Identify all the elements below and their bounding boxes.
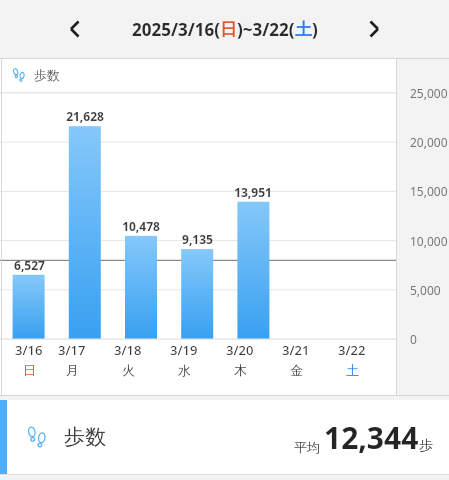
button[interactable]: 歩数 bbox=[0, 400, 449, 474]
staticText: 土 bbox=[295, 19, 312, 40]
button[interactable]: 2025/3/16( bbox=[132, 18, 318, 41]
staticText: 日 bbox=[220, 19, 237, 40]
staticText: 木 bbox=[234, 362, 247, 378]
staticText: 0 bbox=[410, 331, 417, 347]
staticText: 3/22 bbox=[338, 341, 366, 359]
staticText: 20,000 bbox=[410, 134, 448, 150]
staticText: 25,000 bbox=[410, 85, 448, 101]
staticText: ) bbox=[312, 18, 318, 41]
button[interactable]: Previous week bbox=[58, 12, 92, 46]
staticText: 月 bbox=[66, 362, 79, 378]
staticText: 火 bbox=[122, 362, 135, 378]
staticText: 金 bbox=[290, 362, 303, 378]
staticText: 10,000 bbox=[410, 233, 448, 249]
staticText: 2025/3/16( bbox=[132, 18, 220, 41]
staticText: 12,344 bbox=[324, 417, 419, 458]
staticText: 3/21 bbox=[282, 341, 310, 359]
staticText: 13,951 bbox=[234, 184, 272, 200]
staticText: 歩 bbox=[419, 437, 433, 455]
staticText: 日 bbox=[23, 362, 36, 378]
staticText: 3/16 bbox=[15, 341, 43, 359]
staticText: 6,527 bbox=[14, 257, 45, 273]
staticText: 9,135 bbox=[182, 231, 213, 247]
button[interactable]: 歩数 bbox=[0, 58, 396, 92]
staticText: 歩数 bbox=[64, 424, 106, 450]
staticText: 21,628 bbox=[66, 108, 104, 124]
staticText: 15,000 bbox=[410, 183, 448, 199]
staticText: )~3/22( bbox=[237, 18, 295, 41]
staticText: 3/20 bbox=[226, 341, 254, 359]
button[interactable]: Next week bbox=[357, 12, 391, 46]
staticText: 土 bbox=[346, 362, 359, 378]
staticText: 3/18 bbox=[114, 341, 142, 359]
staticText: 平均 bbox=[294, 439, 320, 455]
staticText: 歩数 bbox=[34, 67, 60, 83]
staticText: 5,000 bbox=[410, 282, 441, 298]
staticText: 3/19 bbox=[170, 341, 198, 359]
staticText: 10,478 bbox=[122, 218, 160, 234]
staticText: 3/17 bbox=[58, 341, 86, 359]
staticText: 水 bbox=[178, 362, 191, 378]
